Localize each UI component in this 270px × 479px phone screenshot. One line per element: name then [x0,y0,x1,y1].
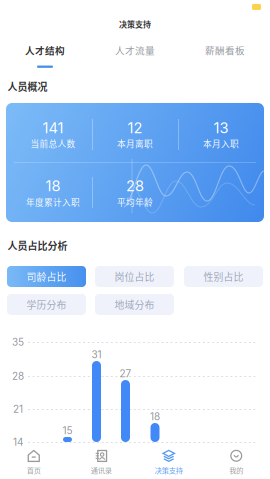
button[interactable]: Contacts [67,448,135,477]
staticText: 平均年龄 [117,196,153,208]
staticText: 12 [127,119,142,137]
staticText: 本月离职 [117,137,153,150]
staticText: 通讯录 [91,465,112,475]
staticText: 我的 [229,465,243,475]
staticText: 人员概况 [7,79,47,94]
button[interactable]: 性别占比 [184,266,263,287]
staticText: 14 [13,436,23,448]
staticText: 学历分布 [26,297,66,312]
staticText: 本月入职 [203,137,239,150]
staticText: 首页 [27,465,41,475]
staticText: 地域分布 [114,297,154,312]
staticText: 岗位占比 [114,269,154,284]
staticText: 年度累计入职 [26,196,80,208]
button[interactable]: 地域分布 [95,294,174,315]
staticText: 决策支持 [155,465,183,475]
button[interactable]: Decision Support [135,448,202,477]
staticText: 15 [62,424,72,437]
staticText: 28 [126,177,144,195]
staticText: 13 [213,119,228,137]
staticText: 18 [45,177,60,195]
staticText: 21 [13,403,23,415]
button[interactable]: 薪酬看板 [180,41,270,59]
staticText: 决策支持 [119,18,151,30]
button[interactable]: 学历分布 [7,294,86,315]
staticText: 35 [12,336,24,348]
staticText: 28 [12,370,24,382]
button[interactable]: Home [0,448,67,477]
staticText: 27 [119,367,131,380]
staticText: 性别占比 [203,269,243,284]
button[interactable]: 司龄占比 [7,266,86,287]
staticText: 141 [42,119,63,137]
button[interactable]: 岗位占比 [95,266,174,287]
button[interactable]: 人才结构 [0,41,90,59]
staticText: 31 [91,348,101,361]
button[interactable]: Profile [202,448,270,477]
staticText: 人才结构 [25,43,65,57]
staticText: 18 [150,410,160,423]
staticText: 当前总人数 [30,137,75,150]
button[interactable]: 人才流量 [90,41,180,59]
staticText: 人才流量 [115,43,155,57]
staticText: 司龄占比 [26,269,66,284]
staticText: 人员占比分析 [7,238,67,253]
staticText: 薪酬看板 [205,43,245,57]
